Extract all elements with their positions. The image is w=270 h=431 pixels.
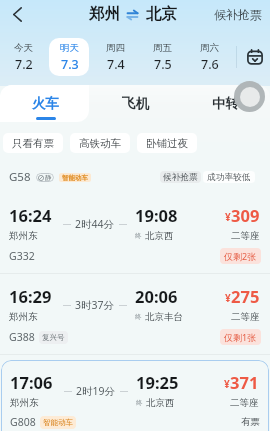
staticText: 2时44分 xyxy=(75,217,115,231)
staticText: 候补抢票 xyxy=(214,7,262,22)
staticText: ¥ xyxy=(225,291,231,305)
button[interactable]: 周五 xyxy=(142,38,183,76)
staticText: G388 xyxy=(9,330,35,344)
staticText: 371 xyxy=(230,371,259,393)
staticText: 高铁动车 xyxy=(79,137,121,150)
staticText: G332 xyxy=(9,249,35,263)
staticText: ¥ xyxy=(224,377,230,391)
staticText: 275 xyxy=(231,285,260,307)
staticText: 静 xyxy=(45,174,52,182)
button[interactable]: 今天 xyxy=(3,38,43,76)
staticText: 候补抢票 xyxy=(163,172,198,183)
button[interactable]: Assistant xyxy=(234,81,265,112)
staticText: 二等座 xyxy=(230,397,259,409)
staticText: G808 xyxy=(10,415,36,429)
staticText: 郑州 xyxy=(89,4,120,24)
staticText: ¥ xyxy=(225,210,231,224)
staticText: 16:29 xyxy=(9,285,52,307)
button[interactable]: Pick date xyxy=(240,40,270,74)
staticText: 周五 xyxy=(153,42,172,54)
button[interactable]: 16:24 xyxy=(0,193,270,274)
staticText: 7.3 xyxy=(61,56,79,73)
staticText: 20:06 xyxy=(135,285,178,307)
staticText: 周六 xyxy=(200,42,219,54)
button[interactable]: 周六 xyxy=(189,38,230,76)
staticText: 终 xyxy=(135,313,142,321)
staticText: 仅剩2张 xyxy=(224,250,257,262)
staticText: 16:24 xyxy=(9,204,52,226)
staticText: G58 xyxy=(9,169,31,185)
staticText: 17:06 xyxy=(10,371,53,393)
staticText: 只看有票 xyxy=(12,137,54,150)
staticText: 北京西 xyxy=(146,397,175,409)
staticText: 飞机 xyxy=(122,95,149,112)
staticText: 7.2 xyxy=(15,56,33,73)
button[interactable]: 候补抢票 xyxy=(160,171,201,183)
button[interactable]: 成功率较低 xyxy=(203,171,255,183)
staticText: 7.4 xyxy=(107,56,125,73)
button[interactable]: 16:29 xyxy=(0,274,270,355)
button[interactable]: Back xyxy=(3,0,31,28)
staticText: 明天 xyxy=(60,42,79,54)
staticText: 火车 xyxy=(32,95,59,112)
staticText: 2时19分 xyxy=(76,384,116,398)
staticText: 309 xyxy=(231,204,260,226)
staticText: 郑州东 xyxy=(10,397,39,409)
staticText: 今天 xyxy=(14,42,33,54)
button[interactable]: 明天 xyxy=(49,38,89,76)
staticText: 卧铺过夜 xyxy=(146,137,188,150)
staticText: 有票 xyxy=(241,416,260,428)
button[interactable]: 飞机 xyxy=(90,85,180,129)
button[interactable]: 中转 xyxy=(180,85,270,129)
staticText: 19:08 xyxy=(135,204,178,226)
staticText: 北京丰台 xyxy=(145,311,183,323)
staticText: 二等座 xyxy=(231,230,260,242)
staticText: 智能动车 xyxy=(43,418,73,427)
staticText: 北京 xyxy=(146,4,177,24)
staticText: 19:25 xyxy=(136,371,179,393)
staticText: 仅剩1张 xyxy=(224,331,257,343)
staticText: 郑州东 xyxy=(9,230,38,242)
staticText: 终 xyxy=(136,399,143,407)
button[interactable]: 高铁动车 xyxy=(70,133,130,153)
button[interactable]: 候补抢票 xyxy=(208,3,270,26)
staticText: 7.6 xyxy=(201,56,219,73)
button[interactable]: 17:06 xyxy=(1,360,269,431)
staticText: 复兴号 xyxy=(42,333,65,342)
staticText: 3时37分 xyxy=(75,298,115,312)
staticText: 7.5 xyxy=(154,56,172,73)
button[interactable]: 周四 xyxy=(95,38,136,76)
staticText: 中转 xyxy=(212,95,239,112)
staticText: 郑州东 xyxy=(9,311,38,323)
button[interactable]: 火车 xyxy=(0,85,90,129)
staticText: 智能动车 xyxy=(62,174,88,182)
staticText: 北京西 xyxy=(145,230,174,242)
button[interactable]: 卧铺过夜 xyxy=(137,133,197,153)
staticText: 二等座 xyxy=(231,311,260,323)
staticText: 终 xyxy=(135,232,142,240)
staticText: 成功率较低 xyxy=(207,172,251,183)
staticText: 周四 xyxy=(106,42,125,54)
button[interactable]: 只看有票 xyxy=(3,133,63,153)
